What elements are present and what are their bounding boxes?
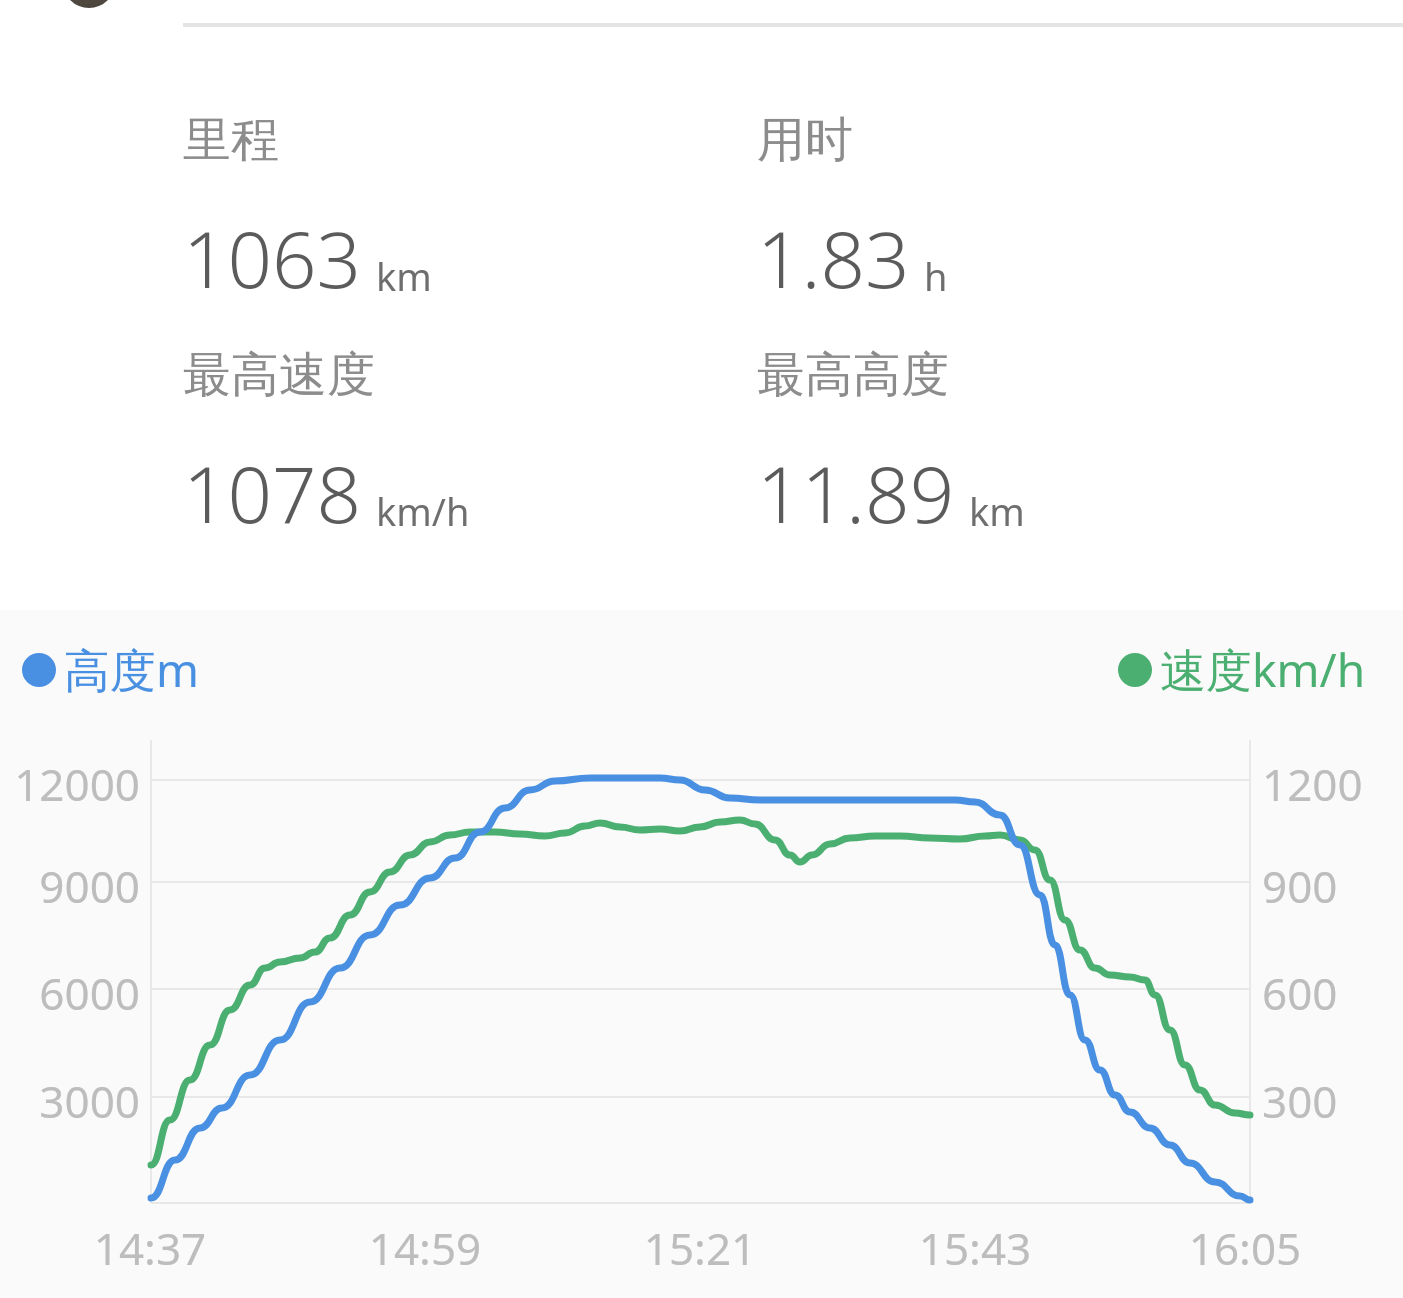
staticText: 用时 <box>757 110 853 170</box>
staticText: km <box>376 250 432 302</box>
staticText: 1063 <box>183 205 362 311</box>
staticText: 1200 <box>1262 754 1363 814</box>
staticText: 9000 <box>0 856 140 916</box>
staticText: 11.89 <box>757 440 955 546</box>
button[interactable]: User avatar <box>63 0 115 8</box>
staticText: 300 <box>1262 1071 1338 1131</box>
staticText: 3000 <box>0 1071 140 1131</box>
staticText: 里程 <box>183 110 279 170</box>
staticText: 14:59 <box>335 1218 515 1278</box>
staticText: 最高高度 <box>757 345 949 405</box>
staticText: 14:37 <box>60 1218 240 1278</box>
staticText: 速度km/h <box>1160 638 1366 701</box>
staticText: 600 <box>1262 963 1338 1023</box>
staticText: 1.83 <box>757 205 910 311</box>
staticText: 900 <box>1262 856 1338 916</box>
staticText: km <box>969 485 1025 537</box>
staticText: km/h <box>376 485 470 537</box>
staticText: 16:05 <box>1155 1218 1335 1278</box>
staticText: 高度m <box>64 638 200 701</box>
staticText: 15:21 <box>610 1218 790 1278</box>
staticText: 1078 <box>183 440 362 546</box>
staticText: 12000 <box>0 754 140 814</box>
button[interactable]: 高度m <box>0 610 1403 1298</box>
staticText: 最高速度 <box>183 345 375 405</box>
staticText: 15:43 <box>885 1218 1065 1278</box>
staticText: h <box>924 250 948 302</box>
staticText: 6000 <box>0 963 140 1023</box>
